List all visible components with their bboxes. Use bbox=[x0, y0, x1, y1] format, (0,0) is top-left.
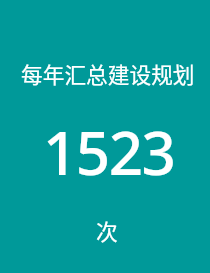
button[interactable]: 每年汇总建设规划 1523 次 bbox=[0, 0, 210, 273]
staticText: 每年汇总建设规划 bbox=[21, 58, 195, 89]
staticText: 1523 bbox=[43, 111, 175, 193]
staticText: 次 bbox=[96, 215, 118, 246]
